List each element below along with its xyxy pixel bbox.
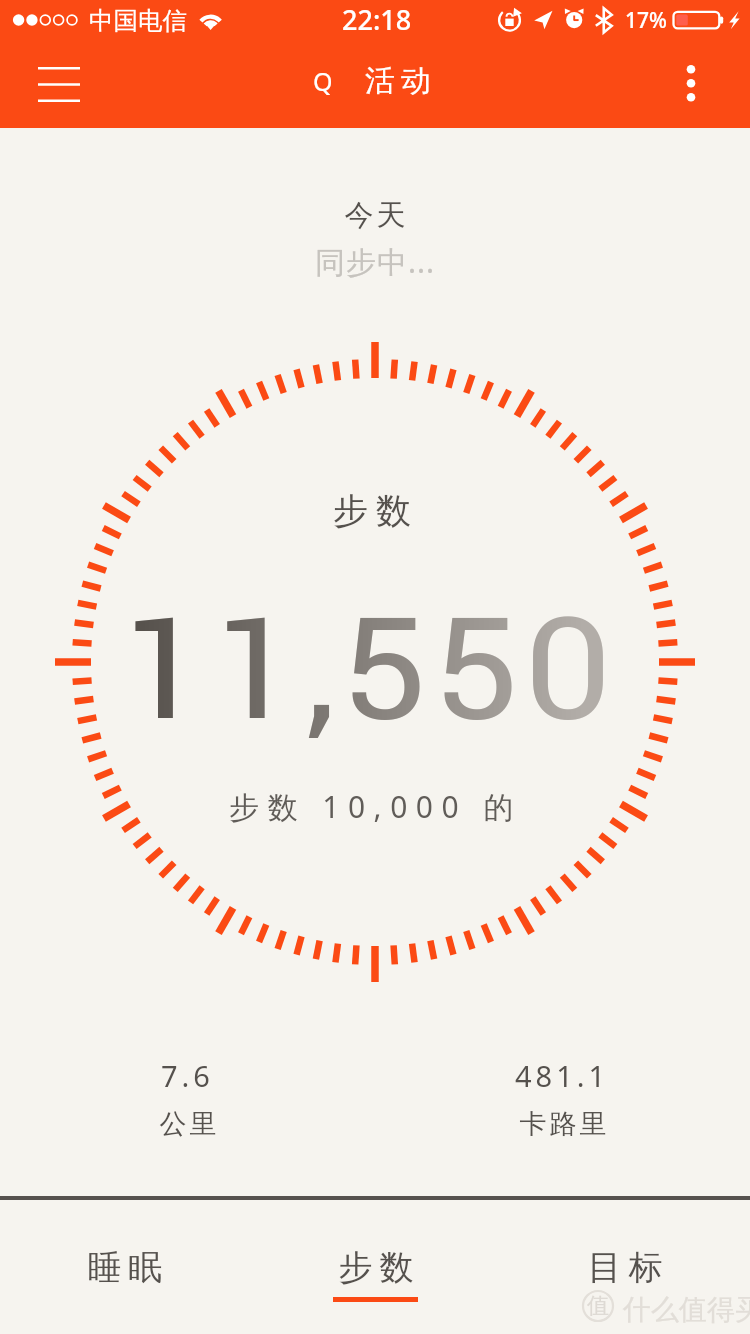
staticText: 卡路里 xyxy=(518,1107,608,1141)
staticText: 17% xyxy=(625,6,667,35)
button[interactable]: 步数 xyxy=(250,1200,500,1302)
staticText: 22:18 xyxy=(342,1,412,38)
staticText: 睡眠 xyxy=(84,1246,166,1289)
staticText: 中国电信 xyxy=(89,5,187,36)
staticText: 公里 xyxy=(158,1107,218,1141)
button[interactable]: 睡眠 xyxy=(0,1200,250,1297)
button[interactable]: 目标 xyxy=(500,1200,750,1297)
staticText: 同步中... xyxy=(315,241,436,282)
button[interactable]: Menu xyxy=(18,40,100,128)
staticText: 步数 xyxy=(335,1246,417,1289)
staticText: 今天 xyxy=(343,197,407,234)
staticText: 7.6 xyxy=(161,1056,214,1095)
staticText: 目标 xyxy=(584,1246,666,1289)
staticText: 步数 10,000 的 xyxy=(229,786,522,827)
staticText: 活动 xyxy=(362,62,434,100)
staticText: 11,550 xyxy=(121,572,617,774)
button[interactable]: More options xyxy=(656,40,726,128)
staticText: 步数 xyxy=(329,489,415,533)
staticText: 值 xyxy=(587,1292,609,1320)
staticText: Q xyxy=(313,64,333,98)
staticText: 481.1 xyxy=(515,1056,610,1095)
staticText: 什么值得买 xyxy=(623,1292,750,1327)
